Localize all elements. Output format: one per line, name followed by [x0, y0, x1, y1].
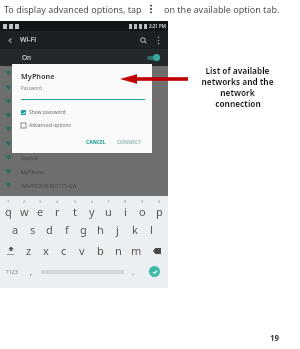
staticText: z	[26, 243, 32, 258]
button[interactable]: m	[127, 240, 145, 261]
staticText: .	[132, 266, 135, 277]
staticText: j	[116, 222, 119, 237]
button[interactable]: Back	[0, 31, 20, 49]
staticText: MyPhone	[21, 84, 44, 91]
button[interactable]: 3	[32, 198, 49, 219]
button[interactable]: d	[41, 219, 58, 240]
button[interactable]: Show password	[21, 109, 66, 116]
button[interactable]: More options	[151, 31, 165, 49]
button[interactable]: b	[91, 240, 109, 261]
staticText: 1	[7, 199, 10, 204]
button[interactable]: Backspace	[145, 240, 168, 261]
staticText: b	[97, 243, 104, 258]
button[interactable]: WAPPS3NR-R0117I-GW	[0, 178, 168, 192]
staticText: networks and the	[201, 76, 274, 87]
button[interactable]: x	[37, 240, 55, 261]
staticText: 19	[270, 332, 280, 343]
button[interactable]: ?123	[0, 261, 24, 282]
staticText: MyPhone	[21, 168, 44, 175]
button[interactable]: MyPhone	[0, 164, 168, 178]
button[interactable]: CANCEL	[83, 137, 109, 148]
staticText: on the available option tab.	[164, 3, 280, 15]
staticText: t	[73, 204, 77, 219]
button[interactable]: 5	[66, 198, 83, 219]
staticText: w	[20, 204, 29, 219]
button[interactable]: Search	[135, 31, 151, 49]
button[interactable]: h	[92, 219, 109, 240]
staticText: CANCEL	[86, 139, 106, 146]
staticText: e	[37, 204, 44, 219]
staticText: v	[79, 243, 85, 258]
staticText: WAPPS3NR-R0117I-GW	[21, 182, 77, 189]
staticText: HomeNet	[21, 112, 45, 119]
staticText: network	[220, 87, 255, 98]
staticText: MyPhone	[21, 71, 55, 81]
button[interactable]: v	[73, 240, 91, 261]
staticText: k	[132, 222, 138, 237]
button[interactable]: z	[20, 240, 37, 261]
staticText: Sophia	[21, 70, 38, 77]
button[interactable]: 2	[16, 198, 32, 219]
button[interactable]: g	[75, 219, 92, 240]
staticText: 8	[124, 199, 127, 204]
staticText: 3	[39, 199, 42, 204]
button[interactable]: ,	[24, 261, 39, 282]
staticText: n	[115, 243, 122, 258]
button[interactable]: 4	[49, 198, 66, 219]
staticText: r	[55, 204, 60, 219]
button[interactable]: Sophia	[0, 150, 168, 164]
staticText: List of available	[205, 65, 270, 76]
button[interactable]: f	[58, 219, 75, 240]
button[interactable]: Advanced options	[21, 122, 72, 129]
staticText: l	[150, 222, 153, 237]
staticText: 7	[107, 199, 110, 204]
staticText: 2:21 PM	[149, 23, 166, 29]
button[interactable]: 7	[100, 198, 117, 219]
button[interactable]: Space	[39, 261, 126, 282]
button[interactable]: n	[109, 240, 127, 261]
button[interactable]: 1	[0, 198, 16, 219]
button[interactable]: Connect-2G	[0, 94, 168, 108]
staticText: 4	[56, 199, 59, 204]
button[interactable]: More options	[147, 3, 155, 15]
button[interactable]: 8	[117, 198, 134, 219]
button[interactable]: 6	[83, 198, 100, 219]
button[interactable]: .	[126, 261, 141, 282]
button[interactable]: MyPhone	[0, 80, 168, 94]
button[interactable]: On	[0, 49, 168, 66]
button[interactable]: Office_WiFi	[0, 122, 168, 136]
staticText: g	[80, 222, 87, 237]
button[interactable]: Shift	[0, 240, 20, 261]
staticText: CONNECT	[117, 139, 142, 146]
button[interactable]: 9	[134, 198, 151, 219]
button[interactable]: Enter	[141, 261, 168, 282]
button[interactable]: k	[126, 219, 143, 240]
staticText: c	[61, 243, 67, 258]
button[interactable]: c	[55, 240, 73, 261]
button[interactable]: j	[109, 219, 126, 240]
button[interactable]: Guest	[0, 136, 168, 150]
staticText: 2	[23, 199, 26, 204]
staticText: 6	[91, 199, 94, 204]
staticText: To display advanced options, tap	[4, 3, 142, 15]
button[interactable]: Sophia	[0, 66, 168, 80]
staticText: ?123	[6, 268, 18, 275]
button[interactable]: a	[7, 219, 24, 240]
staticText: p	[156, 204, 163, 219]
button[interactable]: 0	[151, 198, 168, 219]
button[interactable]: l	[143, 219, 160, 240]
staticText: h	[97, 222, 104, 237]
button[interactable]: s	[24, 219, 41, 240]
staticText: Wi-Fi	[20, 35, 37, 45]
staticText: o	[139, 204, 146, 219]
staticText: Connect-2G	[21, 98, 50, 105]
staticText: 5	[74, 199, 77, 204]
staticText: q	[5, 204, 12, 219]
button[interactable]: HomeNet	[0, 108, 168, 122]
button[interactable]: CONNECT	[114, 137, 145, 148]
staticText: Password	[21, 85, 42, 91]
staticText: a	[12, 222, 19, 237]
staticText: Sophia	[21, 154, 38, 161]
staticText: x	[43, 243, 49, 258]
